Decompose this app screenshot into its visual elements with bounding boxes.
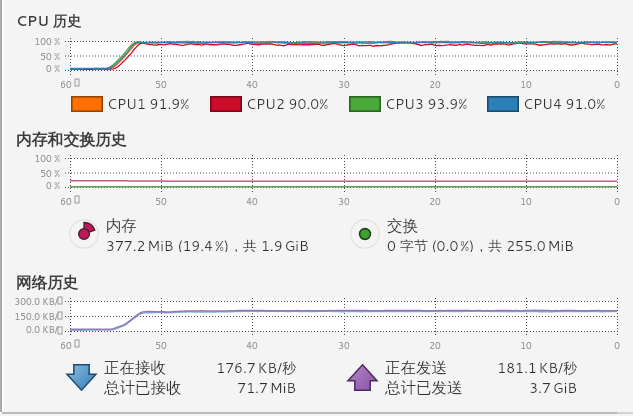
staticText: 50 % [6,167,60,180]
staticText: 50 [139,78,183,91]
button[interactable]: Receiving [67,358,288,396]
staticText: 50 % [6,50,60,63]
staticText: 10 [504,78,548,91]
staticText: 交换 [387,216,418,236]
staticText: 0 [595,78,633,91]
staticText: CPU 历史 [16,11,82,31]
staticText: 0 字节 (0.0 %)，共 255.0 MiB [387,236,574,252]
other: Sending [348,364,377,391]
staticText: 181.1 KB/秒 [497,358,577,378]
staticText: 网络历史 [16,273,78,293]
button[interactable]: CPU1 91.9% [71,93,186,115]
staticText: 正在接收 [104,358,216,378]
staticText: CPU2 90.0% [246,94,329,114]
staticText: 30 [322,339,366,352]
staticText: 40 [230,195,274,208]
staticText: 20 [413,78,457,91]
staticText: CPU4 91.0% [523,94,606,114]
other: Memory usage [69,219,99,249]
button[interactable]: CPU3 93.9% [349,93,464,115]
staticText: 内存 [106,216,137,236]
staticText: 60 [44,339,88,352]
staticText: 0 % [6,179,60,192]
staticText: 10 [504,339,548,352]
staticText: 总计已发送 [385,378,497,396]
staticText: 150.0 KB/ [0,310,58,323]
staticText: 0 % [6,62,60,75]
staticText: 10 [504,195,548,208]
staticText: 60 [44,78,88,91]
button[interactable]: Swap usage [350,216,567,252]
staticText: 100 % [6,35,60,48]
staticText: 30 [322,195,366,208]
staticText: 30 [322,78,366,91]
staticText: 60 [44,195,88,208]
staticText: 0.0 KB/ [0,323,58,336]
staticText: 内存和交换历史 [16,130,127,150]
other: Swap usage [350,219,380,249]
button[interactable]: CPU4 91.0% [487,93,602,115]
staticText: 50 [139,195,183,208]
staticText: 正在发送 [385,358,497,378]
staticText: 300.0 KB/ [0,295,58,308]
staticText: 100 % [6,152,60,165]
staticText: 20 [413,339,457,352]
button[interactable]: Memory usage [69,216,302,252]
button[interactable]: CPU2 90.0% [210,93,325,115]
staticText: 0 [595,195,633,208]
staticText: 3.7 GiB [497,378,577,396]
staticText: 0 [595,339,633,352]
button[interactable]: Sending [348,358,569,396]
staticText: 377.2 MiB (19.4 %)，共 1.9 GiB [106,236,309,252]
staticText: CPU1 91.9% [107,94,190,114]
staticText: 71.7 MiB [216,378,296,396]
staticText: 40 [230,78,274,91]
staticText: 20 [413,195,457,208]
staticText: 40 [230,339,274,352]
staticText: CPU3 93.9% [385,94,468,114]
staticText: 50 [139,339,183,352]
staticText: 总计已接收 [104,378,216,396]
staticText: 176.7 KB/秒 [216,358,296,378]
other: Receiving [67,364,96,391]
